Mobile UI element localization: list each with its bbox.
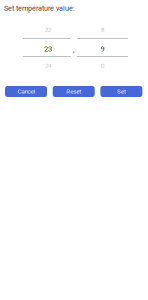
staticText: 24 (45, 62, 51, 69)
button[interactable]: 24 (24, 62, 72, 69)
staticText: 0 (101, 62, 104, 69)
button[interactable]: 22 (24, 26, 72, 33)
button[interactable]: Cancel (5, 86, 47, 97)
button[interactable]: 8 (78, 26, 127, 33)
staticText: Set (117, 88, 126, 95)
staticText: Reset (66, 88, 81, 95)
button[interactable]: Reset (53, 86, 95, 97)
staticText: , (73, 45, 74, 54)
button[interactable]: 9 (78, 44, 127, 53)
staticText: Set temperature value: (4, 4, 75, 12)
staticText: Cancel (17, 88, 34, 95)
button[interactable]: 23 (24, 44, 72, 53)
staticText: 23 (44, 44, 52, 53)
staticText: 9 (100, 44, 104, 53)
staticText: 22 (45, 26, 51, 33)
staticText: 8 (101, 26, 104, 33)
button[interactable]: Set (100, 86, 142, 97)
button[interactable]: 0 (78, 62, 127, 69)
